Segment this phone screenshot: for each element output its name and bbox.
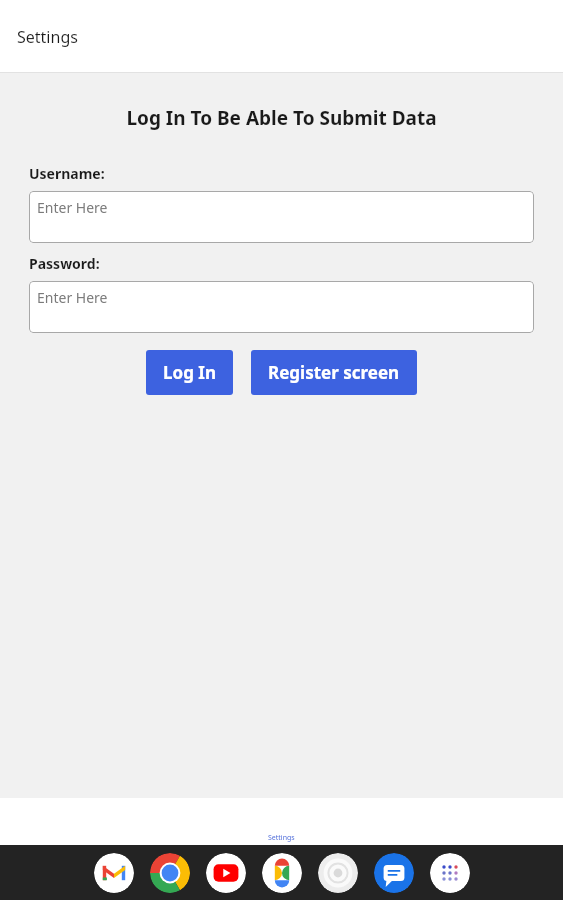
- button[interactable]: Messages: [374, 853, 414, 893]
- staticText: Enter Here: [37, 288, 108, 307]
- button[interactable]: All apps: [430, 853, 470, 893]
- staticText: Settings: [268, 833, 295, 843]
- button[interactable]: Log In: [146, 350, 233, 395]
- staticText: Register screen: [268, 361, 400, 384]
- button[interactable]: Enter Here: [29, 281, 534, 333]
- button[interactable]: Chrome: [150, 853, 190, 893]
- staticText: Log In To Be Able To Submit Data: [126, 105, 437, 131]
- staticText: Enter Here: [37, 198, 108, 217]
- button[interactable]: Enter Here: [29, 191, 534, 243]
- staticText: Username:: [29, 164, 105, 183]
- button[interactable]: Gmail: [94, 853, 134, 893]
- button[interactable]: YouTube: [206, 853, 246, 893]
- button[interactable]: Register screen: [251, 350, 417, 395]
- staticText: Log In: [163, 361, 216, 384]
- button[interactable]: Camera: [318, 853, 358, 893]
- button[interactable]: Settings: [17, 22, 78, 52]
- button[interactable]: Photos: [262, 853, 302, 893]
- staticText: Password:: [29, 254, 100, 273]
- staticText: Settings: [17, 26, 78, 48]
